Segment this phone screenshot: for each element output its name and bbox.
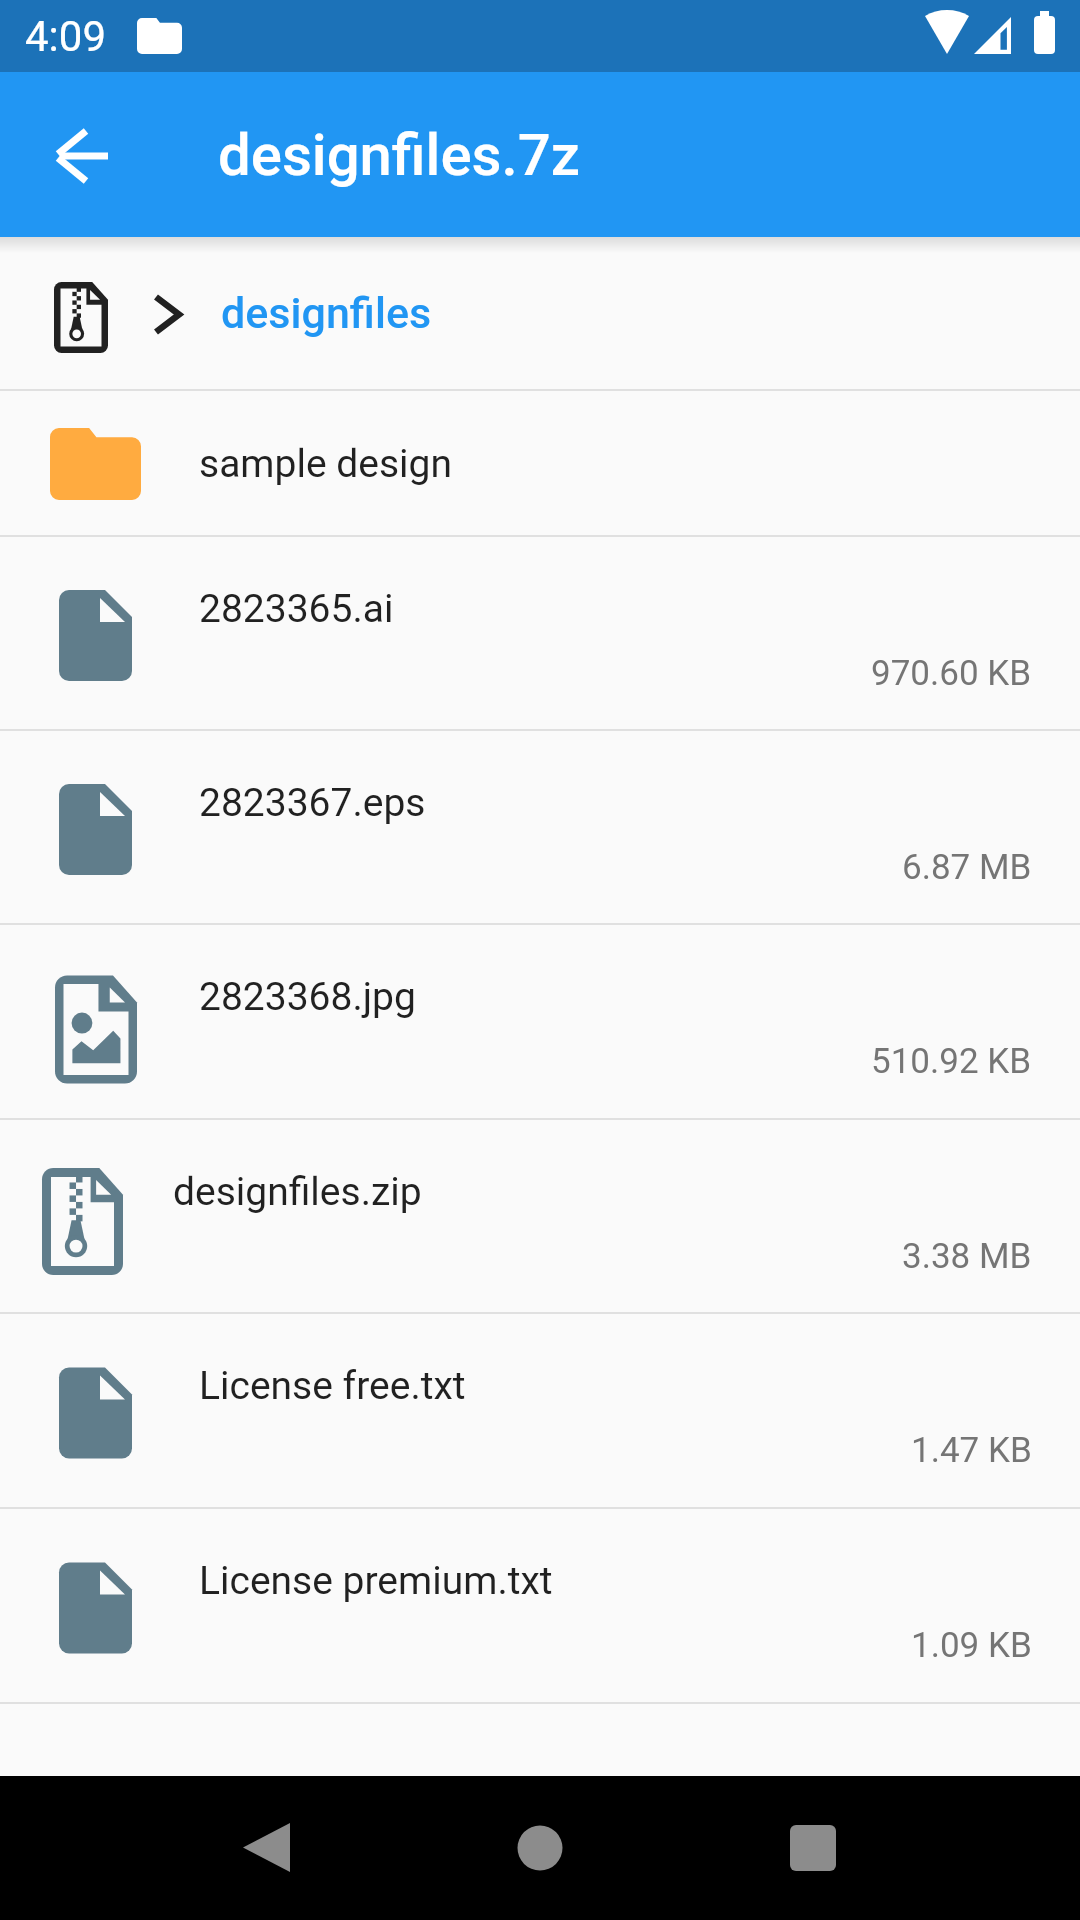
staticText: 1.47 KB (911, 1430, 1032, 1471)
staticText: 2823367.eps (199, 780, 426, 826)
staticText: 510.92 KB (871, 1041, 1032, 1082)
staticText: designfiles (221, 288, 432, 338)
staticText: 1.09 KB (911, 1625, 1032, 1666)
staticText: designfiles.zip (173, 1169, 422, 1215)
staticText: designfiles.7z (218, 121, 580, 189)
button[interactable] (515, 1823, 565, 1873)
staticText: 6.87 MB (902, 847, 1032, 888)
staticText: License free.txt (199, 1363, 466, 1409)
staticText: sample design (199, 441, 453, 487)
button[interactable]: 2823365.ai (0, 537, 1080, 731)
button[interactable]: License premium.txt (0, 1509, 1080, 1704)
staticText: 3.38 MB (902, 1236, 1032, 1277)
button[interactable]: 2823368.jpg (0, 925, 1080, 1120)
staticText: License premium.txt (199, 1558, 553, 1604)
button[interactable]: 2823367.eps (0, 731, 1080, 925)
staticText: 2823368.jpg (199, 974, 416, 1020)
button[interactable]: designfiles.zip (0, 1120, 1080, 1314)
staticText: 2823365.ai (199, 586, 394, 632)
button[interactable]: designfiles (0, 237, 1080, 389)
button[interactable] (35, 105, 135, 205)
button[interactable]: sample design (0, 391, 1080, 537)
button[interactable] (241, 1823, 291, 1873)
button[interactable]: License free.txt (0, 1314, 1080, 1509)
button[interactable] (788, 1823, 838, 1873)
staticText: 970.60 KB (871, 653, 1032, 694)
staticText: 4:09 (25, 12, 106, 61)
